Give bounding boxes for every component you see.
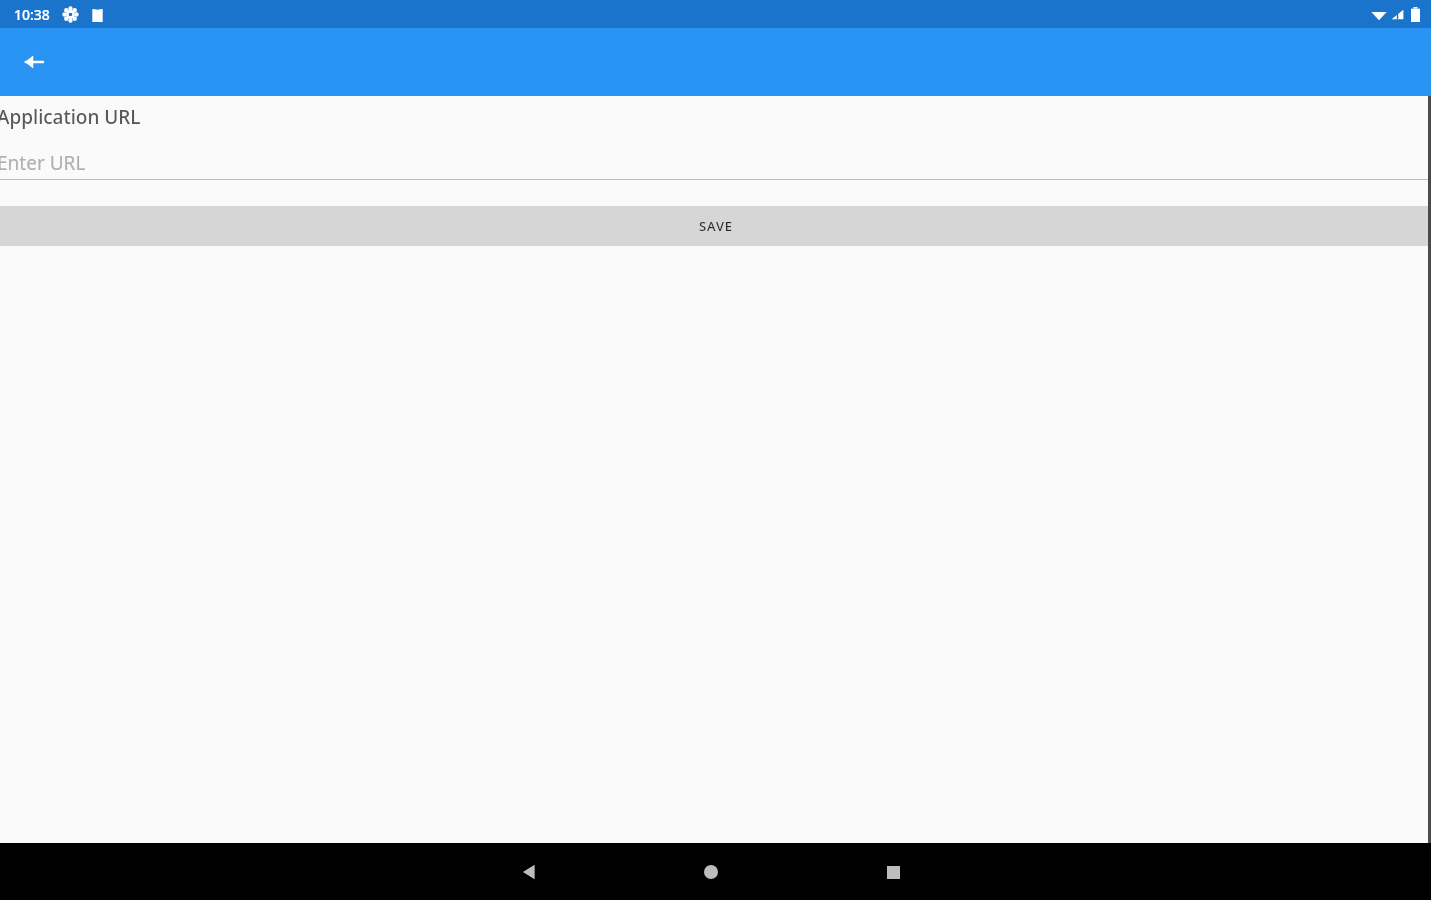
button[interactable]: Recent apps <box>869 848 917 896</box>
button[interactable]: Enter URL <box>0 146 1431 179</box>
button[interactable]: Home <box>687 848 735 896</box>
staticText: Enter URL <box>0 150 86 176</box>
button[interactable]: Back <box>505 848 553 896</box>
staticText: 10:38 <box>14 5 50 24</box>
staticText: Application URL <box>0 104 141 130</box>
button[interactable]: Navigate up <box>10 38 58 86</box>
staticText: SAVE <box>699 217 733 235</box>
button[interactable]: SAVE <box>0 206 1431 246</box>
